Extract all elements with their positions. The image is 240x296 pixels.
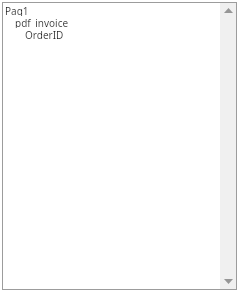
button[interactable]: Pag1 — [5, 4, 211, 16]
button[interactable]: OrderID — [5, 28, 211, 40]
button[interactable]: Scroll up — [220, 2, 237, 19]
staticText: pdf_invoice — [15, 16, 69, 28]
staticText: OrderID — [25, 28, 64, 40]
staticText: Pag1 — [5, 4, 29, 16]
button[interactable]: pdf_invoice — [5, 16, 211, 28]
button[interactable]: Scroll down — [220, 273, 237, 290]
